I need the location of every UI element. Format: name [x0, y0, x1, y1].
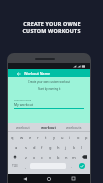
staticText: q [11, 135, 14, 140]
button[interactable]: r [34, 132, 42, 142]
button[interactable]: , [21, 163, 29, 169]
staticText: i [69, 135, 71, 140]
button[interactable]: f [38, 142, 46, 152]
button[interactable]: a [12, 142, 21, 152]
staticText: workout [16, 125, 30, 130]
staticText: j [65, 145, 67, 150]
staticText: e [29, 135, 32, 140]
button[interactable]: i [66, 132, 74, 142]
button[interactable]: q [8, 132, 17, 142]
button[interactable]: workouts [64, 125, 84, 130]
staticText: d [33, 145, 36, 150]
button[interactable]: t [42, 132, 50, 142]
button[interactable]: Shift [8, 152, 21, 162]
button[interactable]: d [30, 142, 38, 152]
staticText: workouts [66, 125, 82, 130]
staticText: h [57, 145, 60, 150]
button[interactable]: Back [18, 174, 32, 183]
button[interactable]: g [46, 142, 54, 152]
button[interactable]: u [58, 132, 66, 142]
staticText: CUSTOM WORKOUTS [22, 27, 81, 34]
staticText: x [33, 155, 36, 160]
button[interactable]: Home [42, 174, 56, 183]
staticText: c [41, 155, 43, 160]
button[interactable]: ?123 [9, 163, 21, 169]
staticText: . [71, 164, 72, 169]
staticText: ?123 [12, 164, 18, 168]
staticText: m [72, 155, 76, 160]
button[interactable]: o [74, 132, 82, 142]
button[interactable]: workout [39, 125, 58, 130]
button[interactable]: k [70, 142, 78, 152]
staticText: t [45, 135, 47, 140]
staticText: n [65, 155, 68, 160]
staticText: l [81, 145, 83, 150]
staticText: g [49, 145, 52, 150]
staticText: s [25, 145, 27, 150]
staticText: r [37, 135, 39, 140]
button[interactable]: Recent apps [66, 174, 80, 183]
button[interactable]: m [70, 152, 78, 162]
staticText: a [15, 145, 18, 150]
staticText: Workout Name [24, 71, 51, 76]
button[interactable]: l [78, 142, 86, 152]
staticText: o [77, 135, 80, 140]
button[interactable]: Enter [79, 163, 85, 169]
staticText: , [25, 164, 26, 169]
staticText: p [85, 135, 88, 140]
staticText: workout [41, 125, 56, 130]
button[interactable]: n [62, 152, 70, 162]
button[interactable]: j [62, 142, 70, 152]
button[interactable]: Backspace [78, 152, 90, 162]
staticText: u [61, 135, 64, 140]
staticText: Start by naming it [38, 87, 61, 91]
button[interactable]: Back [8, 69, 90, 77]
staticText: w [20, 135, 24, 140]
staticText: Workout Name [14, 98, 32, 101]
button[interactable]: p [82, 132, 90, 142]
button[interactable]: workout [14, 125, 32, 130]
staticText: y [53, 135, 56, 140]
staticText: CREATE YOUR OWNE [23, 20, 81, 27]
staticText: z [25, 155, 27, 160]
staticText: v [49, 155, 52, 160]
button[interactable]: e [26, 132, 34, 142]
button[interactable]: Back [16, 71, 21, 76]
button[interactable]: z [21, 152, 30, 162]
staticText: Create your own custom workout [28, 80, 71, 84]
button[interactable]: b [54, 152, 62, 162]
button[interactable]: w [17, 132, 26, 142]
button[interactable]: v [46, 152, 54, 162]
button[interactable]: h [54, 142, 62, 152]
button[interactable]: s [21, 142, 30, 152]
staticText: My workout [14, 102, 33, 107]
button[interactable]: c [38, 152, 46, 162]
staticText: f [41, 145, 43, 150]
button[interactable]: x [30, 152, 38, 162]
staticText: k [73, 145, 76, 150]
staticText: b [57, 155, 60, 160]
button[interactable]: y [50, 132, 58, 142]
